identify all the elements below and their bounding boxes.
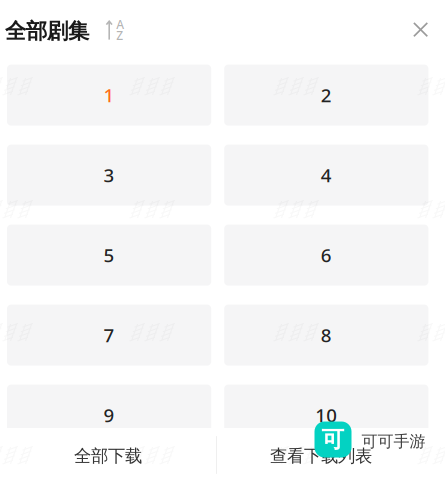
button[interactable]: 7 xyxy=(7,305,211,366)
staticText: 3 xyxy=(104,163,115,187)
staticText: 9 xyxy=(104,403,115,427)
button[interactable]: 1 xyxy=(7,65,211,126)
button[interactable]: 2 xyxy=(224,65,428,126)
staticText: 5 xyxy=(104,243,115,267)
staticText: 8 xyxy=(321,323,332,347)
staticText: 10 xyxy=(315,403,337,427)
staticText: 全部下载 xyxy=(74,445,142,467)
button[interactable]: 8 xyxy=(224,305,428,366)
staticText: 6 xyxy=(321,243,332,267)
button[interactable]: 查看下载列表 xyxy=(216,428,445,480)
staticText: 1 xyxy=(104,83,115,107)
button[interactable]: Close xyxy=(404,13,437,46)
button[interactable]: 10 xyxy=(224,385,428,446)
staticText: A xyxy=(116,16,124,32)
button[interactable]: 6 xyxy=(224,225,428,286)
staticText: 可 xyxy=(321,426,344,453)
staticText: 可可手游 xyxy=(361,431,425,451)
button[interactable]: 3 xyxy=(7,145,211,206)
button[interactable]: 可可手游 xyxy=(314,421,426,457)
staticText: 查看下载列表 xyxy=(270,445,372,467)
button[interactable]: 全部下载 xyxy=(0,428,216,480)
staticText: 4 xyxy=(321,163,332,187)
button[interactable]: 4 xyxy=(224,145,428,206)
button[interactable]: Sort order xyxy=(99,13,132,47)
staticText: Z xyxy=(116,27,123,43)
staticText: 7 xyxy=(104,323,115,347)
staticText: 2 xyxy=(321,83,332,107)
button[interactable]: 5 xyxy=(7,225,211,286)
button[interactable]: 9 xyxy=(7,385,211,446)
staticText: 全部剧集 xyxy=(5,18,89,44)
